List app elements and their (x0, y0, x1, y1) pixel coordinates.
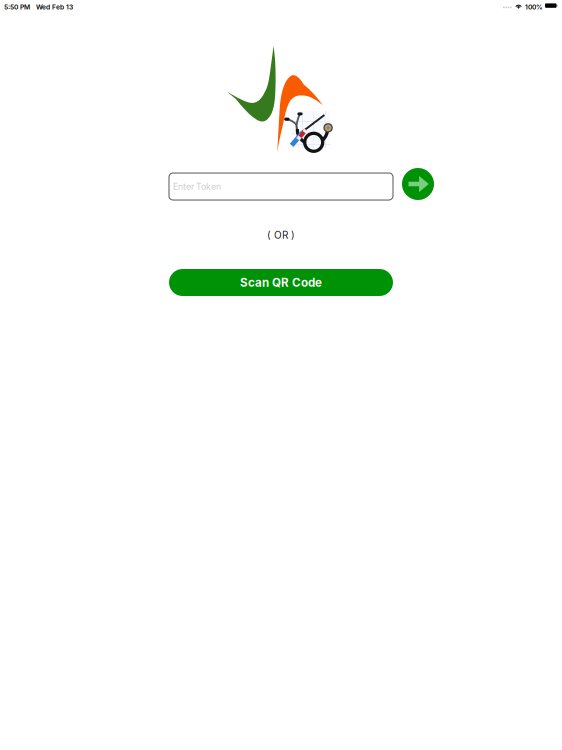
staticText: 100% (525, 3, 543, 11)
staticText: ( OR ) (267, 229, 295, 241)
button[interactable]: Enter Token (169, 173, 393, 200)
button[interactable]: Submit token (402, 168, 434, 200)
staticText: 5:50 PM (4, 3, 30, 11)
button[interactable]: Scan QR Code (169, 269, 393, 296)
staticText: Enter Token (173, 181, 221, 192)
staticText: Wed Feb 13 (36, 3, 73, 11)
staticText: Scan QR Code (240, 275, 322, 289)
